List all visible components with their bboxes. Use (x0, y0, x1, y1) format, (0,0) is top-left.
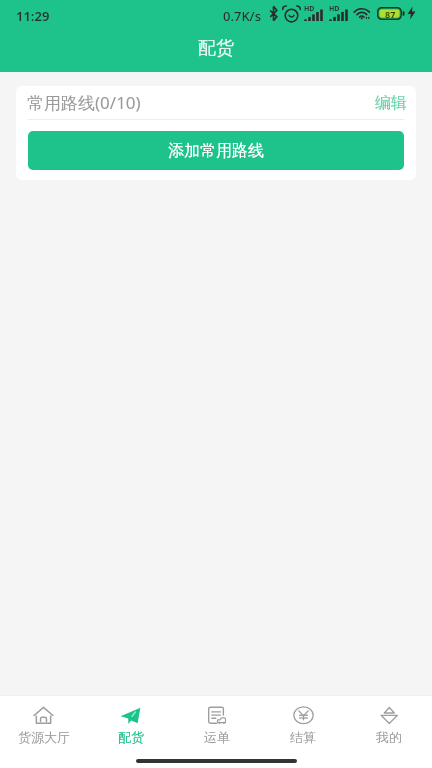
staticText: 配货 (118, 729, 144, 745)
button[interactable]: 配货 (87, 696, 174, 754)
staticText: 11:29 (16, 7, 50, 25)
button[interactable]: 添加常用路线 (28, 131, 404, 170)
button[interactable]: 运单 (174, 696, 260, 754)
staticText: HD (304, 4, 315, 14)
staticText: 编辑 (375, 93, 407, 113)
staticText: 添加常用路线 (168, 141, 264, 161)
staticText: 0.7K/s (223, 7, 261, 25)
staticText: 我的 (376, 729, 402, 745)
button[interactable]: 货源大厅 (0, 696, 87, 754)
staticText: 87 (385, 8, 396, 20)
button[interactable]: 我的 (346, 696, 432, 754)
staticText: HD (329, 4, 340, 14)
staticText: 结算 (290, 729, 316, 745)
staticText: 运单 (204, 729, 230, 745)
staticText: 配货 (198, 37, 234, 60)
staticText: 常用路线(0/10) (27, 91, 141, 114)
button[interactable]: 编辑 (374, 89, 408, 117)
staticText: 货源大厅 (18, 729, 70, 745)
button[interactable]: 结算 (260, 696, 346, 754)
